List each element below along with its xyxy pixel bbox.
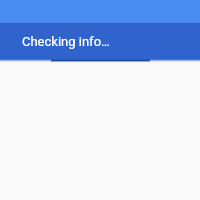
staticText: Checking info… xyxy=(22,34,110,49)
button[interactable]: Checking info… xyxy=(0,23,200,59)
